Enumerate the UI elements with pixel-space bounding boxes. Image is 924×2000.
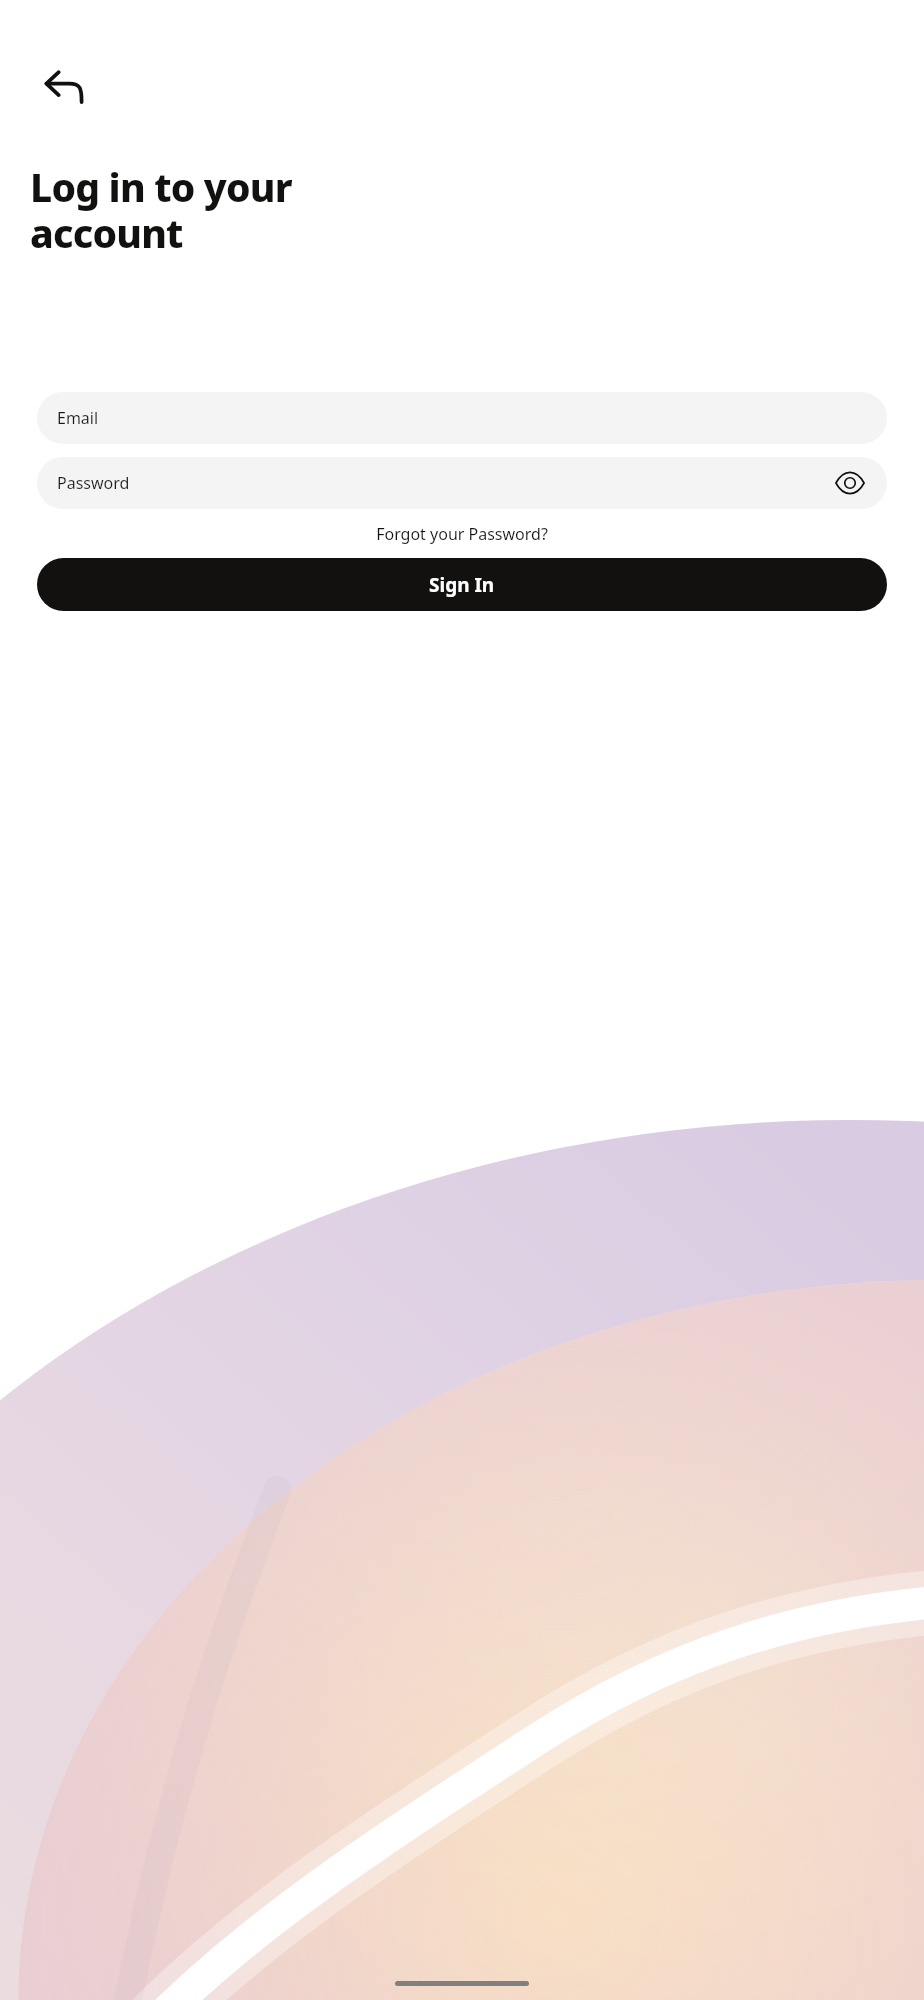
staticText: Sign In xyxy=(429,572,495,598)
button[interactable]: Back xyxy=(36,60,92,116)
button[interactable]: Email xyxy=(37,392,887,444)
button[interactable]: Sign In xyxy=(37,558,887,611)
button[interactable]: Password xyxy=(37,457,887,509)
staticText: Email xyxy=(57,407,99,429)
staticText: Forgot your Password? xyxy=(376,523,548,545)
button[interactable]: Forgot your Password? xyxy=(0,523,924,545)
staticText: Log in to your account xyxy=(30,160,292,260)
staticText: Password xyxy=(57,472,130,494)
button[interactable]: Show password xyxy=(833,466,867,500)
